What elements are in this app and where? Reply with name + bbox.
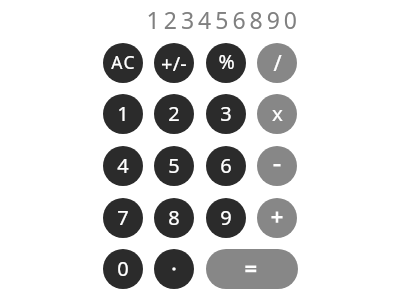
staticText: 7 [117, 204, 129, 231]
staticText: 9 [220, 204, 232, 231]
staticText: / [273, 47, 282, 77]
button[interactable]: x [257, 94, 297, 134]
staticText: 1 [117, 100, 129, 127]
staticText: +/- [161, 50, 187, 77]
staticText: 6 [220, 152, 232, 179]
button[interactable]: Minus [257, 146, 297, 186]
button[interactable]: 1 [103, 94, 143, 134]
button[interactable]: Decimal point [154, 249, 194, 289]
button[interactable]: 4 [103, 146, 143, 186]
button[interactable]: 2 [154, 94, 194, 134]
staticText: 4 [117, 152, 129, 179]
button[interactable]: Plus [257, 198, 297, 238]
button[interactable]: 5 [154, 146, 194, 186]
staticText: AC [111, 50, 136, 74]
button[interactable]: 9 [206, 198, 246, 238]
button[interactable]: 7 [103, 198, 143, 238]
button[interactable]: +/- [154, 43, 194, 83]
button[interactable]: % [206, 43, 246, 83]
staticText: 5 [168, 152, 180, 179]
button[interactable]: AC [103, 43, 143, 83]
staticText: 8 [168, 204, 180, 231]
staticText: 2 [168, 100, 180, 127]
button[interactable]: 6 [206, 146, 246, 186]
staticText: x [272, 99, 283, 127]
staticText: 0 [117, 255, 129, 282]
button[interactable]: / [257, 43, 297, 83]
staticText: 3 [220, 100, 232, 127]
button[interactable]: 0 [103, 249, 143, 289]
button[interactable]: 8 [154, 198, 194, 238]
staticText: % [218, 48, 235, 75]
button[interactable]: Equals [206, 249, 298, 289]
button[interactable]: 3 [206, 94, 246, 134]
staticText: 123456890 [146, 4, 301, 35]
